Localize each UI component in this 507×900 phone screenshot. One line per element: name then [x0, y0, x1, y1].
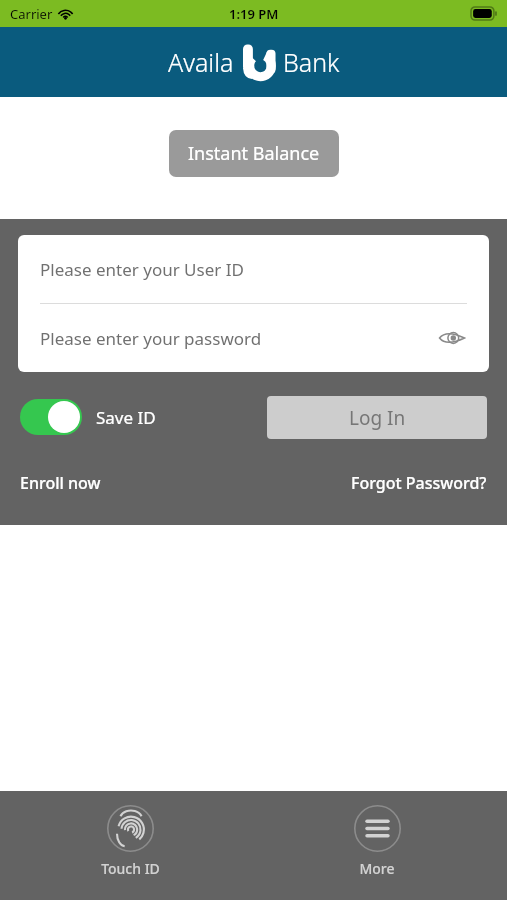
- staticText: Please enter your User ID: [40, 258, 244, 281]
- staticText: Forgot Password?: [351, 472, 487, 494]
- staticText: Instant Balance: [188, 141, 320, 166]
- staticText: 1:19 PM: [229, 5, 279, 23]
- button[interactable]: Forgot Password?: [351, 466, 487, 500]
- staticText: Please enter your password: [40, 327, 437, 350]
- button[interactable]: Touch ID: [55, 805, 205, 878]
- staticText: Enroll now: [20, 472, 101, 494]
- staticText: Bank: [283, 45, 340, 79]
- staticText: Availa: [168, 45, 234, 79]
- staticText: Log In: [349, 405, 406, 431]
- button[interactable]: Log In: [267, 396, 487, 439]
- button[interactable]: Enroll now: [20, 466, 101, 500]
- button[interactable]: Show password: [437, 323, 467, 353]
- button[interactable]: Save ID toggle: [20, 399, 82, 435]
- button[interactable]: Instant Balance: [169, 130, 339, 177]
- button[interactable]: More: [302, 805, 452, 878]
- button[interactable]: Please enter your User ID: [18, 235, 489, 303]
- button[interactable]: Please enter your password: [18, 304, 489, 372]
- staticText: Carrier: [10, 5, 53, 23]
- staticText: Save ID: [96, 406, 156, 429]
- staticText: Touch ID: [101, 859, 160, 878]
- staticText: More: [359, 859, 395, 878]
